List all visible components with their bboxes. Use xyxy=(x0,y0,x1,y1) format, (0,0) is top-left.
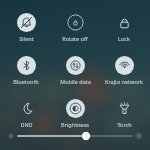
button[interactable]: DND xyxy=(3,99,49,128)
button[interactable]: Rotate off xyxy=(52,13,98,42)
staticText: DND xyxy=(20,121,33,128)
button[interactable]: Brightness xyxy=(52,99,98,128)
staticText: Rotate off xyxy=(62,35,88,42)
button[interactable]: Lock xyxy=(101,13,147,42)
button[interactable]: Mobile data xyxy=(52,56,98,85)
button[interactable]: Torch xyxy=(101,99,147,128)
staticText: Krajta network xyxy=(105,78,143,85)
staticText: Lock xyxy=(118,35,130,42)
staticText: Silent xyxy=(19,35,34,42)
button[interactable]: Brightness slider xyxy=(0,128,150,144)
staticText: Torch xyxy=(117,121,132,128)
staticText: Bluetooth xyxy=(13,78,39,85)
staticText: Mobile data xyxy=(60,78,91,85)
staticText: Brightness xyxy=(61,121,89,128)
button[interactable]: Silent xyxy=(3,13,49,42)
button[interactable]: Krajta network xyxy=(101,56,147,85)
button[interactable]: Bluetooth xyxy=(3,56,49,85)
